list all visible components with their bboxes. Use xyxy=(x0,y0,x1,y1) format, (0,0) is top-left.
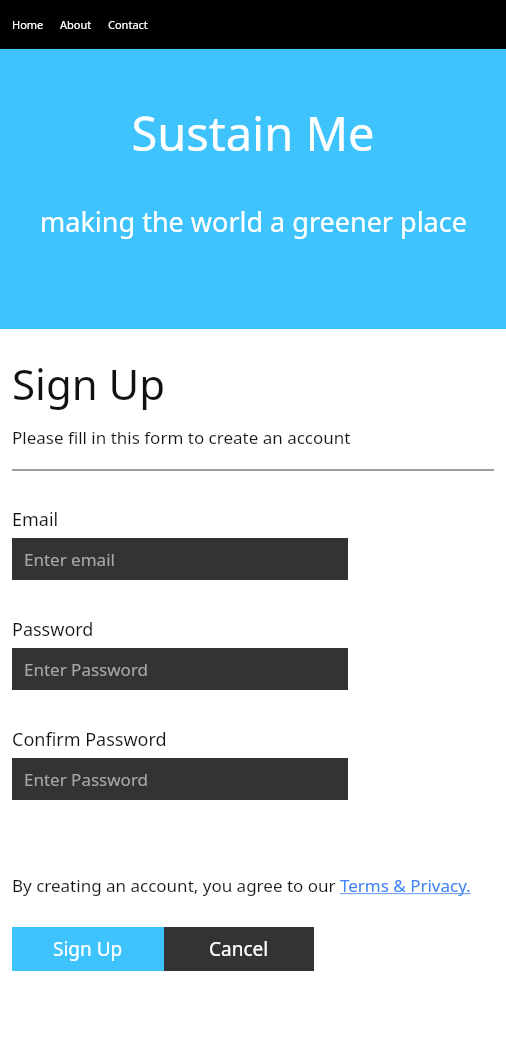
button[interactable]: Enter email xyxy=(12,538,348,580)
staticText: Contact xyxy=(108,17,148,32)
staticText: Sign Up xyxy=(12,355,166,412)
button[interactable]: Contact xyxy=(104,13,152,36)
staticText: Home xyxy=(12,17,44,32)
staticText: By creating an account, you agree to our… xyxy=(12,874,471,897)
staticText: Please fill in this form to create an ac… xyxy=(12,426,351,449)
staticText: Cancel xyxy=(209,936,269,962)
staticText: Email xyxy=(12,507,59,532)
button[interactable]: About xyxy=(56,13,96,36)
staticText: making the world a greener place xyxy=(40,203,467,240)
button[interactable]: Cancel xyxy=(164,927,314,971)
staticText: About xyxy=(60,17,92,32)
staticText: Enter Password xyxy=(24,658,149,681)
staticText: Sustain Me xyxy=(131,101,375,165)
button[interactable]: Sign Up xyxy=(12,927,164,971)
staticText: Enter email xyxy=(24,548,115,571)
button[interactable]: Enter Password xyxy=(12,758,348,800)
button[interactable]: Home xyxy=(8,13,48,36)
staticText: Enter Password xyxy=(24,768,149,791)
staticText: Password xyxy=(12,617,94,642)
button[interactable]: Enter Password xyxy=(12,648,348,690)
staticText: Sign Up xyxy=(53,936,123,962)
staticText: Confirm Password xyxy=(12,727,167,752)
